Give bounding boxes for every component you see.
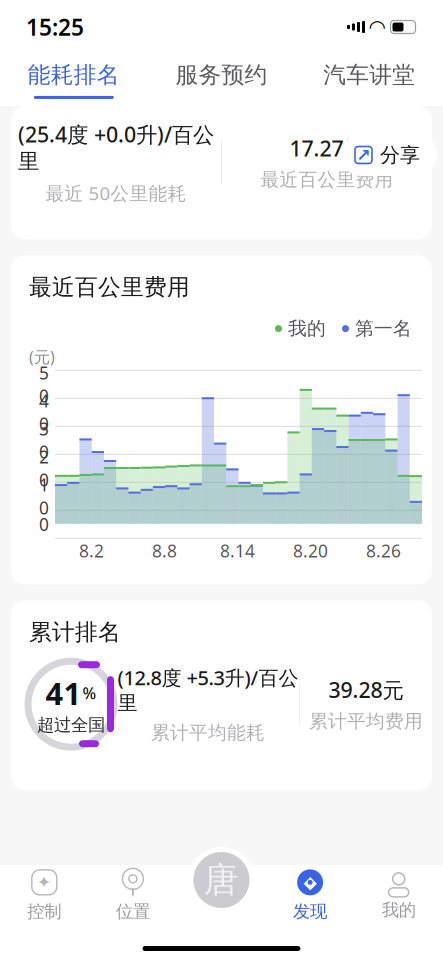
button[interactable]: 位置	[89, 864, 177, 926]
staticText: 我的	[288, 317, 326, 340]
staticText: (25.4度 +0.0升)/百公里	[18, 120, 214, 174]
staticText: 我的	[382, 899, 416, 921]
staticText: (元)	[29, 346, 55, 367]
button[interactable]: 能耗排名	[0, 61, 148, 99]
staticText: 8.8	[152, 539, 177, 562]
staticText: 唐	[204, 859, 239, 901]
staticText: 能耗排名	[28, 61, 120, 89]
staticText: 最近百公里费用	[260, 168, 393, 191]
button[interactable]: 我的	[354, 864, 443, 926]
staticText: 汽车讲堂	[323, 61, 415, 89]
button[interactable]: ✦	[0, 864, 89, 926]
staticText: %	[82, 682, 96, 704]
staticText: ◠	[369, 16, 384, 38]
staticText: 10	[39, 473, 49, 519]
staticText: 累计平均费用	[309, 710, 423, 733]
staticText: ↗	[356, 145, 371, 165]
staticText: 最近 50公里能耗	[45, 180, 186, 205]
staticText: 最近百公里费用	[29, 273, 190, 301]
staticText: 发现	[293, 901, 327, 922]
staticText: 累计排名	[29, 618, 121, 646]
staticText: 第一名	[355, 317, 412, 340]
staticText: 控制	[27, 901, 61, 922]
staticText: 17.27元	[289, 134, 364, 162]
button[interactable]: 汽车讲堂	[295, 61, 443, 99]
staticText: 8.14	[220, 539, 255, 562]
staticText: ◆	[304, 872, 317, 892]
staticText: 41	[45, 673, 81, 713]
staticText: 30	[39, 417, 49, 463]
staticText: ✦	[37, 872, 52, 892]
staticText: 8.26	[366, 539, 401, 562]
button[interactable]: 唐	[188, 847, 254, 913]
button[interactable]: 分享	[341, 134, 437, 176]
staticText: 位置	[116, 901, 150, 922]
staticText: 20	[39, 445, 49, 491]
staticText: 分享	[380, 143, 420, 167]
staticText: 0	[39, 513, 49, 536]
staticText: 8.2	[79, 539, 104, 562]
button[interactable]: 服务预约	[148, 61, 295, 99]
staticText: 8.20	[293, 539, 328, 562]
staticText: (12.8度 +5.3升)/百公里	[117, 664, 298, 715]
staticText: 39.28元	[328, 676, 403, 704]
staticText: 累计平均能耗	[151, 721, 265, 744]
staticText: 15:25	[26, 12, 84, 42]
staticText: 超过全国	[37, 714, 105, 736]
button[interactable]: ◆	[266, 864, 354, 926]
staticText: 50	[39, 361, 49, 407]
staticText: 服务预约	[175, 61, 267, 89]
staticText: 40	[39, 389, 49, 435]
